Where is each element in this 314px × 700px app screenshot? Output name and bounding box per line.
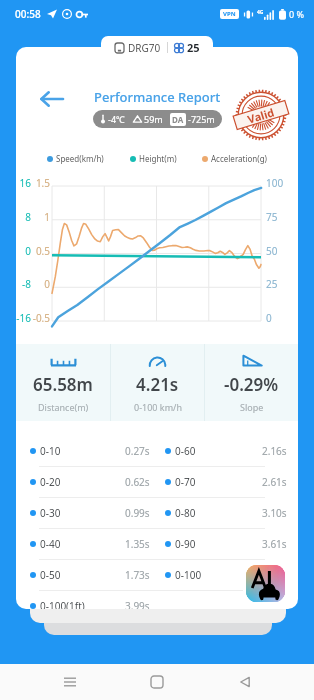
staticText: -0.5 xyxy=(32,311,50,325)
staticText: -725m xyxy=(188,113,215,125)
staticText: 4G xyxy=(257,9,264,16)
staticText: VPN xyxy=(223,10,236,18)
button[interactable] xyxy=(165,591,287,609)
staticText: 1.35s xyxy=(125,537,150,551)
button[interactable]: 0-20 xyxy=(30,467,150,497)
button[interactable]: 0-40 xyxy=(30,529,150,559)
button[interactable]: AI assistant xyxy=(246,565,285,602)
staticText: 65.58m xyxy=(33,373,93,396)
staticText: Slope xyxy=(240,401,264,413)
staticText: 75 xyxy=(266,210,296,224)
staticText: 4.21s xyxy=(136,373,179,396)
staticText: 0 xyxy=(266,311,296,325)
staticText: 0.27s xyxy=(125,444,150,458)
button[interactable]: -0.29% xyxy=(205,344,298,421)
button[interactable]: 0-100 xyxy=(165,560,287,590)
staticText: Performance Report xyxy=(94,88,221,106)
staticText: 25 xyxy=(266,277,296,291)
staticText: 8 xyxy=(16,210,31,224)
staticText: DRG70 xyxy=(128,41,161,55)
staticText: Valid xyxy=(246,104,276,126)
staticText: 0.99s xyxy=(125,506,150,520)
staticText: 3.99s xyxy=(125,599,150,609)
staticText: 0-100 km/h xyxy=(134,401,182,413)
button[interactable]: 0-30 xyxy=(30,498,150,528)
staticText: DA xyxy=(172,114,184,125)
button[interactable]: 0-90 xyxy=(165,529,287,559)
staticText: 59m xyxy=(144,113,163,125)
staticText: 16 xyxy=(16,176,31,190)
staticText: 0-80 xyxy=(175,506,196,520)
staticText: 0-100 xyxy=(175,568,202,582)
staticText: Height(m) xyxy=(139,153,177,164)
staticText: 2.61s xyxy=(262,475,287,489)
button[interactable]: Home xyxy=(139,664,175,700)
staticText: 0-100(1ft) xyxy=(40,599,85,609)
staticText: Speed(km/h) xyxy=(56,153,104,164)
staticText: Distance(m) xyxy=(38,401,89,413)
button[interactable]: Back xyxy=(227,664,263,700)
staticText: 0 xyxy=(32,277,50,291)
button[interactable]: Back xyxy=(34,82,68,116)
staticText: 00:58 xyxy=(15,7,41,21)
staticText: 3.10s xyxy=(262,506,287,520)
staticText: -0.29% xyxy=(224,373,279,396)
button[interactable]: 0-70 xyxy=(165,467,287,497)
staticText: 0 % xyxy=(289,8,304,20)
button[interactable]: 0-60 xyxy=(165,436,287,466)
button[interactable]: DRG70 xyxy=(101,36,213,58)
staticText: 0-70 xyxy=(175,475,196,489)
staticText: 0.62s xyxy=(125,475,150,489)
button[interactable]: 0-10 xyxy=(30,436,150,466)
staticText: -8 xyxy=(16,277,31,291)
staticText: 0-20 xyxy=(40,475,61,489)
button[interactable]: Recent apps xyxy=(52,664,88,700)
staticText: 0.5 xyxy=(32,244,50,258)
staticText: 0-10 xyxy=(40,444,61,458)
staticText: -4℃ xyxy=(108,113,126,125)
button[interactable]: 65.58m xyxy=(16,344,110,421)
staticText: 1.5 xyxy=(32,176,50,190)
button[interactable]: 0-100(1ft) xyxy=(30,591,150,609)
staticText: 1 xyxy=(32,210,50,224)
staticText: 2.16s xyxy=(262,444,287,458)
button[interactable]: 0-80 xyxy=(165,498,287,528)
staticText: 50 xyxy=(266,244,296,258)
staticText: 0-90 xyxy=(175,537,196,551)
staticText: 100 xyxy=(266,176,296,190)
button[interactable]: 4.21s xyxy=(111,344,204,421)
staticText: 3.61s xyxy=(262,537,287,551)
staticText: 0-30 xyxy=(40,506,61,520)
staticText: -16 xyxy=(16,311,31,325)
button[interactable]: 0-50 xyxy=(30,560,150,590)
staticText: Acceleration(g) xyxy=(211,153,267,164)
staticText: 0-40 xyxy=(40,537,61,551)
staticText: 0-60 xyxy=(175,444,196,458)
staticText: 0 xyxy=(16,244,31,258)
staticText: 0-50 xyxy=(40,568,61,582)
staticText: 1.73s xyxy=(125,568,150,582)
staticText: 25 xyxy=(187,40,200,55)
